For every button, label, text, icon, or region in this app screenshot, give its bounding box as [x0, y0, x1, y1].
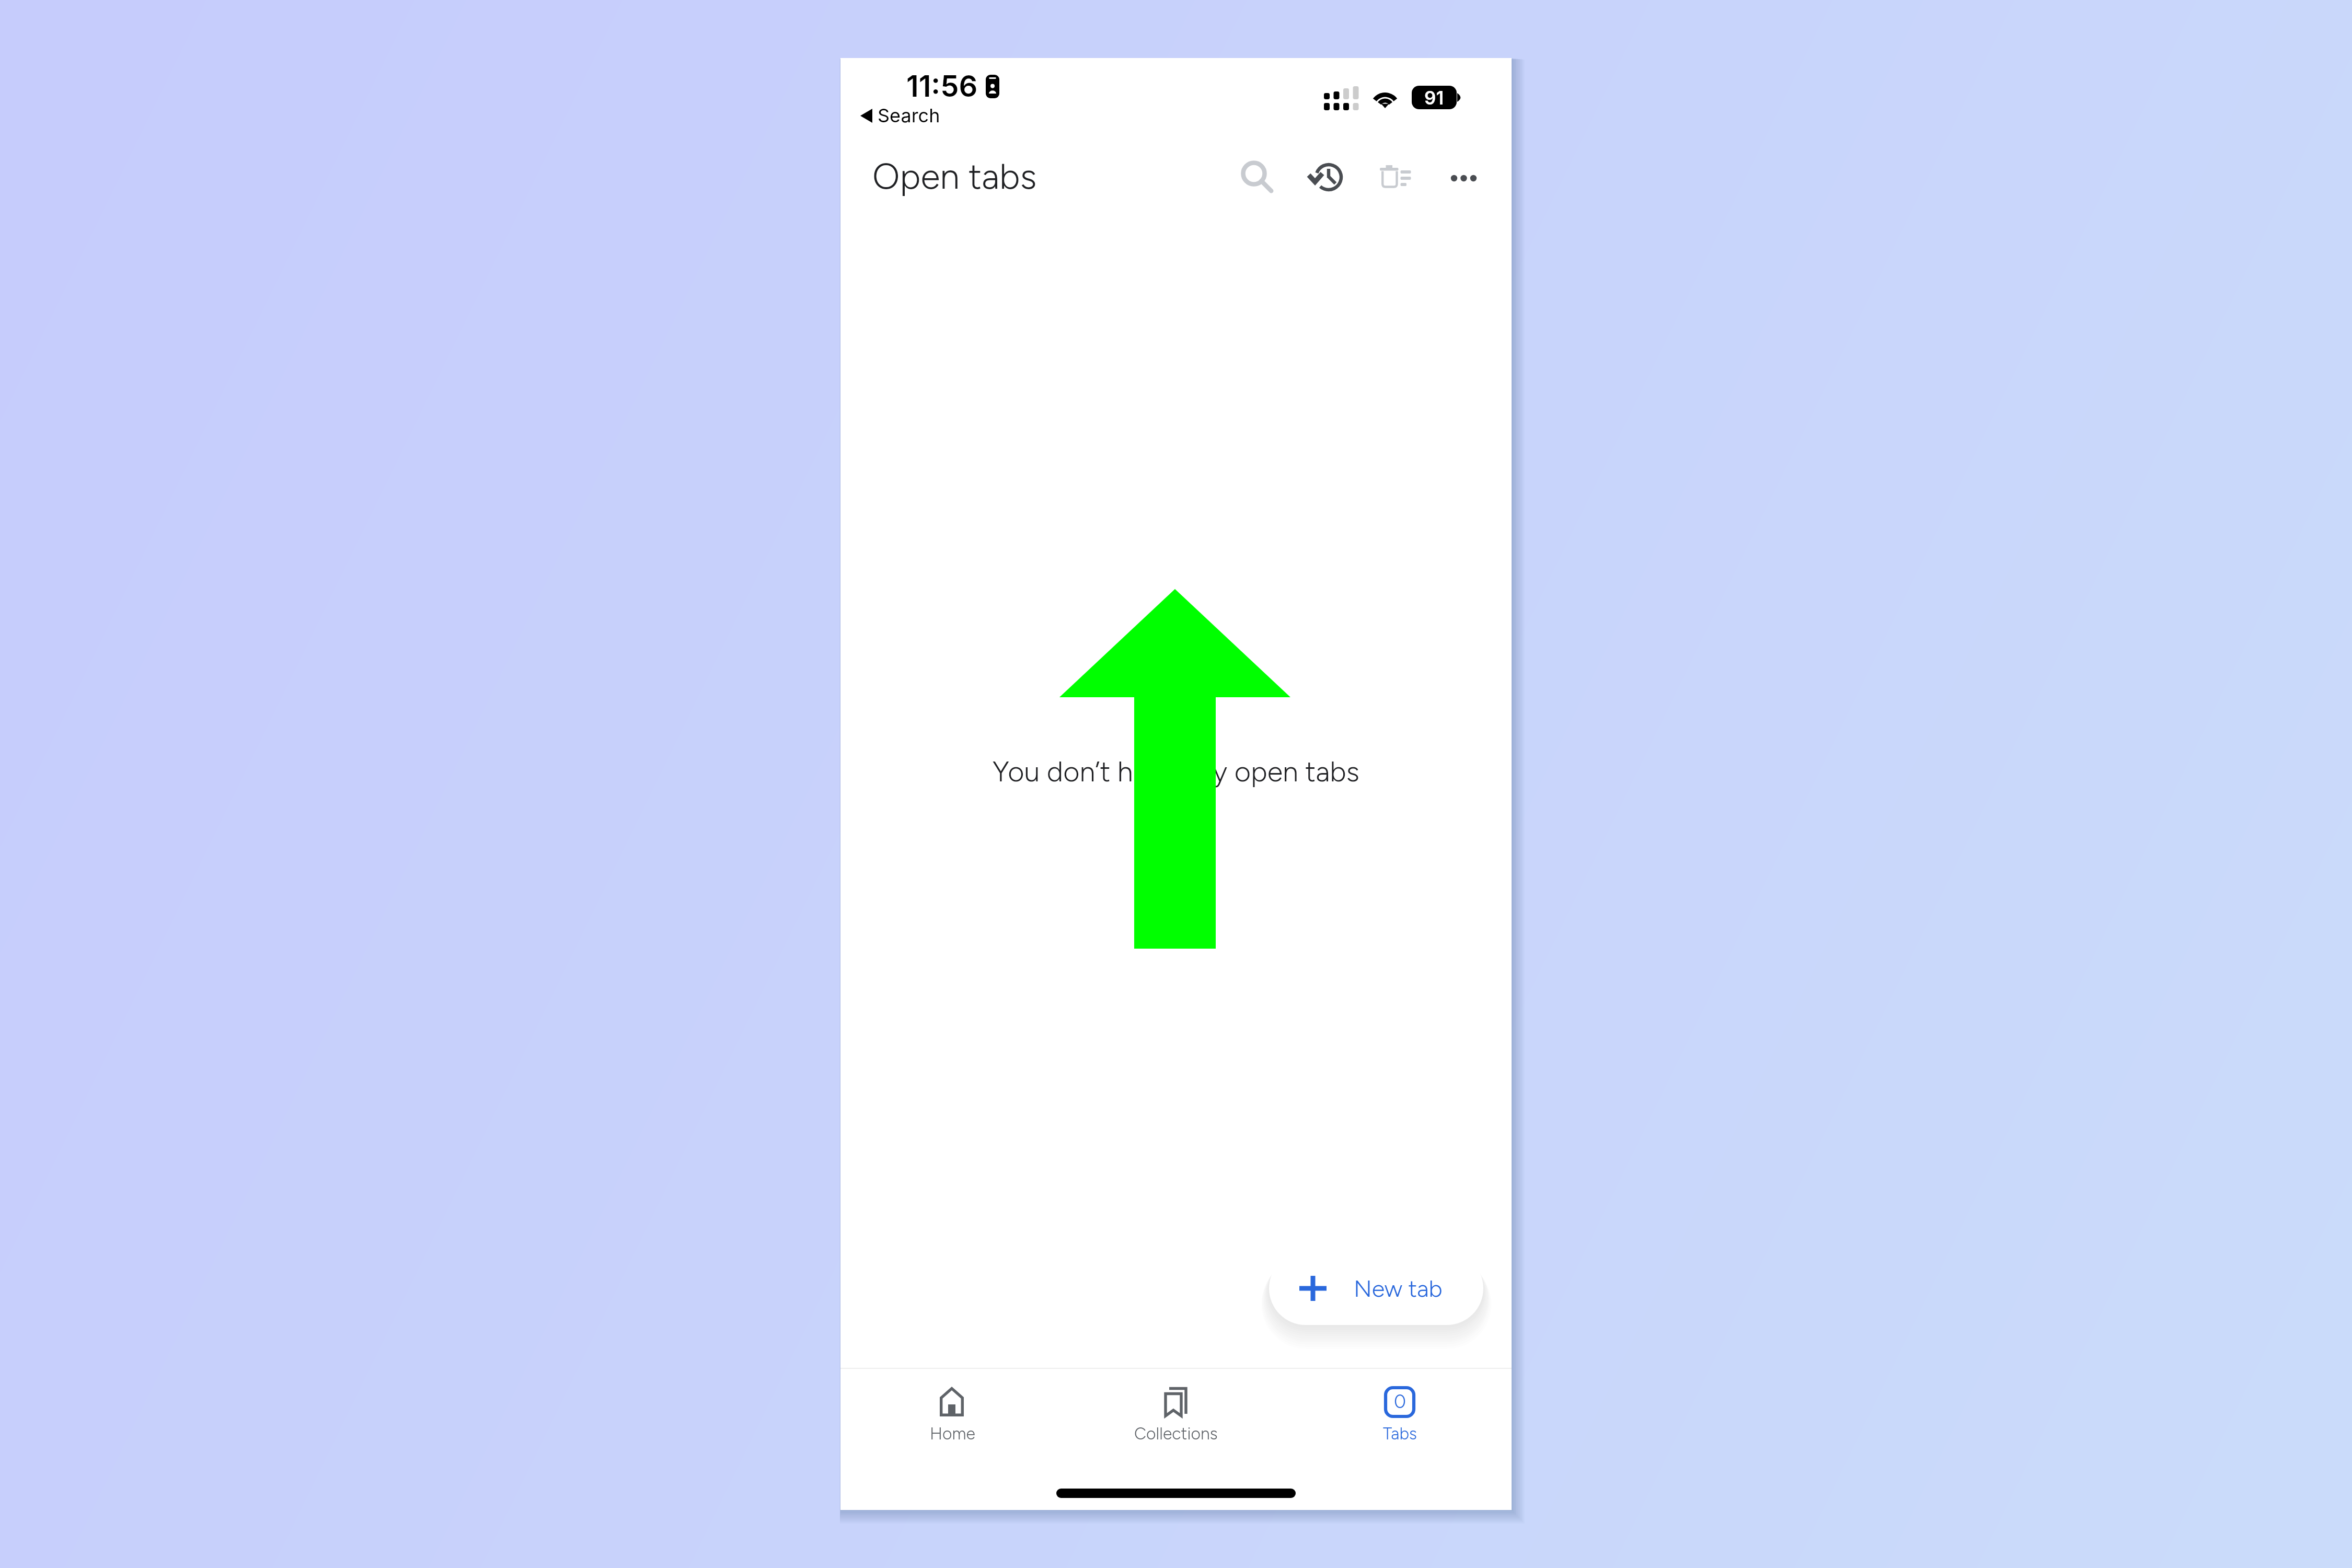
- staticText: You don’t have any open tabs: [993, 755, 1359, 789]
- button[interactable]: Search tabs: [1223, 147, 1285, 210]
- button[interactable]: Recent tabs: [1297, 146, 1360, 209]
- button[interactable]: 0: [1288, 1368, 1512, 1400]
- button[interactable]: More options: [1444, 157, 1485, 199]
- staticText: 11:56: [906, 68, 978, 104]
- staticText: 0: [1394, 1390, 1406, 1413]
- button[interactable]: Home: [840, 1368, 1064, 1400]
- staticText: Tabs: [1383, 1424, 1417, 1444]
- staticText: Open tabs: [872, 155, 1037, 198]
- staticText: 91: [1424, 87, 1444, 109]
- staticText: Home: [930, 1424, 975, 1444]
- button[interactable]: Collections: [1064, 1368, 1288, 1400]
- staticText: Collections: [1134, 1424, 1218, 1444]
- staticText: New tab: [1354, 1274, 1443, 1302]
- staticText: Search: [878, 104, 940, 127]
- button[interactable]: Search: [856, 102, 940, 131]
- button[interactable]: Close all tabs: [1378, 163, 1420, 194]
- button[interactable]: New tab: [1269, 1252, 1483, 1325]
